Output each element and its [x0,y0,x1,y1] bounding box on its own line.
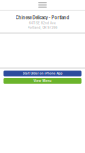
staticText: Portland, OR 97266 [27,26,57,29]
button[interactable]: View Menu [3,78,81,84]
staticText: Chinese Delicacy - Portland [15,15,69,20]
staticText: View Menu [33,79,51,83]
staticText: 6411 SE 82nd Ave [29,21,56,25]
button[interactable]: Start Order on iPhone App [3,71,81,76]
button[interactable]: Menu [36,0,49,10]
staticText: Start Order on iPhone App [22,72,62,75]
